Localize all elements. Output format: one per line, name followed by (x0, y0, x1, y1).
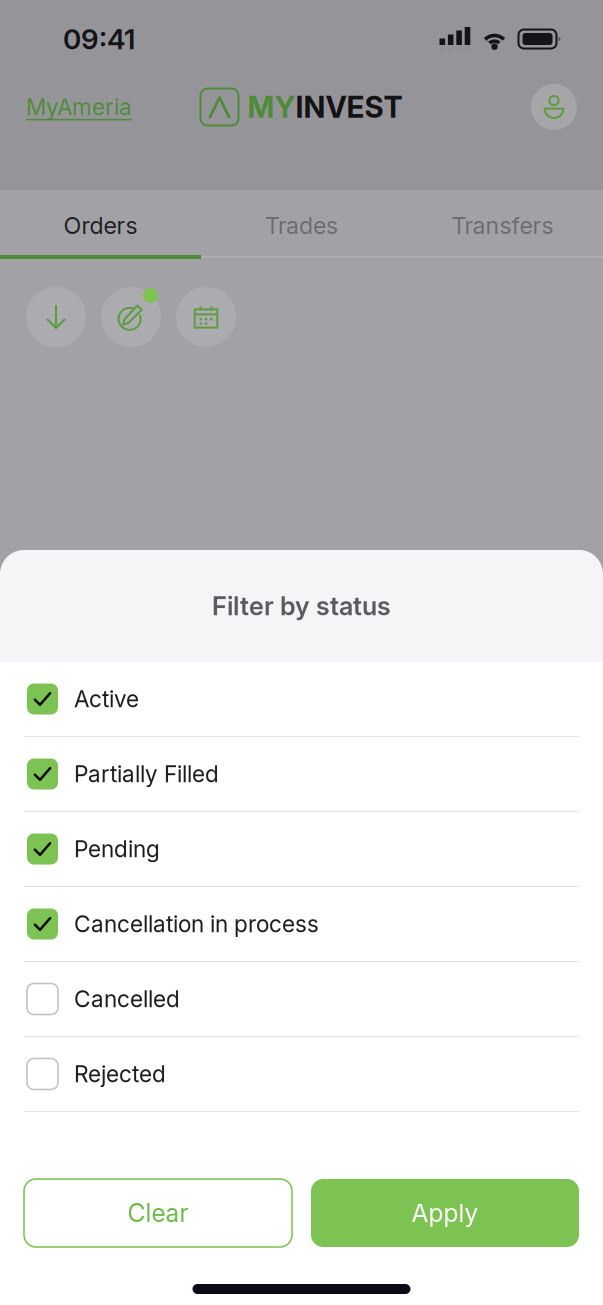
button[interactable]: Partially Filled (0, 737, 603, 812)
button[interactable]: Cancelled (0, 962, 603, 1037)
button[interactable]: Orders (0, 190, 201, 255)
button[interactable]: Filter (101, 287, 161, 347)
button[interactable]: Trades (201, 190, 402, 255)
staticText: Filter by status (212, 591, 391, 621)
staticText: Trades (265, 211, 338, 240)
staticText: 09:41 (63, 22, 135, 56)
button[interactable]: Pending (0, 812, 603, 887)
button[interactable]: Profile (531, 84, 577, 130)
button[interactable]: Rejected (0, 1037, 603, 1112)
staticText: Rejected (74, 1060, 166, 1088)
staticText: MyAmeria (26, 93, 132, 121)
staticText: Clear (127, 1198, 188, 1228)
button[interactable]: Cancellation in process (0, 887, 603, 962)
staticText: Cancellation in process (74, 910, 319, 938)
staticText: Pending (74, 835, 160, 863)
button[interactable]: Apply (311, 1179, 579, 1247)
button[interactable]: Transfers (402, 190, 603, 255)
staticText: Apply (411, 1198, 478, 1228)
button[interactable]: Calendar (176, 287, 236, 347)
button[interactable]: MyAmeria (26, 85, 132, 129)
staticText: Cancelled (74, 985, 180, 1013)
button[interactable]: Clear (24, 1179, 292, 1247)
staticText: MY (247, 89, 295, 125)
staticText: Orders (63, 211, 137, 240)
staticText: Active (74, 685, 139, 713)
button[interactable]: Active (0, 662, 603, 737)
button[interactable]: Download (26, 287, 86, 347)
staticText: Transfers (451, 211, 553, 240)
staticText: INVEST (295, 89, 402, 125)
staticText: Partially Filled (74, 760, 219, 788)
